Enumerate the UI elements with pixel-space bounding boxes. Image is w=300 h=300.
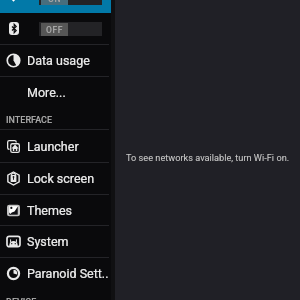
staticText: System (27, 234, 69, 249)
staticText: Lock screen (27, 171, 95, 186)
button[interactable]: Launcher (0, 130, 111, 162)
staticText: ON (48, 0, 62, 4)
button[interactable]: Lock screen (0, 163, 111, 194)
staticText: DEVICE (6, 297, 37, 300)
staticText: More... (27, 85, 66, 100)
button[interactable]: Wi-Fi (0, 0, 111, 13)
button[interactable]: System (0, 226, 111, 257)
staticText: Paranoid Sett.. (27, 266, 109, 281)
staticText: Launcher (27, 139, 79, 154)
staticText: Data usage (27, 53, 90, 68)
staticText: Themes (27, 203, 73, 218)
button[interactable]: Bluetooth (0, 13, 111, 44)
staticText: INTERFACE (6, 115, 53, 126)
staticText: To see networks available, turn Wi-Fi on… (126, 152, 290, 163)
staticText: OFF (46, 25, 64, 35)
button[interactable]: Themes (0, 195, 111, 225)
button[interactable]: More... (0, 77, 111, 107)
button[interactable]: Paranoid Sett.. (0, 258, 111, 289)
button[interactable]: Data usage (0, 45, 111, 76)
